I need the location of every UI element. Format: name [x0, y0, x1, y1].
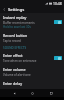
button[interactable]: Toggle on	[54, 56, 62, 60]
button[interactable]: Recents	[46, 89, 56, 97]
button[interactable]: Instant replay	[0, 13, 64, 31]
staticText: Enter volume	[3, 67, 26, 72]
staticText: Settings	[8, 7, 25, 13]
staticText: Volume of alert tone	[3, 73, 31, 77]
staticText: Tone when on enterance	[3, 59, 37, 63]
button[interactable]: Home	[27, 89, 37, 97]
button[interactable]: Back	[0, 6, 64, 13]
button[interactable]: Enter effect	[0, 51, 64, 65]
button[interactable]: Enter delay	[0, 79, 64, 89]
staticText: Enter delay	[3, 81, 22, 86]
button[interactable]: Back	[2, 7, 7, 12]
staticText: Buffer recent moments	[3, 21, 35, 25]
staticText: Record button	[3, 33, 28, 38]
button[interactable]: Toggle on	[54, 20, 62, 24]
staticText: SOUND EFFECTS	[3, 46, 27, 50]
staticText: Hold to save last 30s	[3, 25, 31, 29]
staticText: Enter effect	[3, 53, 23, 58]
staticText: Instant replay	[3, 15, 27, 20]
button[interactable]: Record button	[0, 31, 64, 45]
button[interactable]: Enter volume	[0, 65, 64, 79]
staticText: 10:48	[53, 1, 62, 6]
staticText: Tap to record	[3, 39, 21, 43]
button[interactable]: Back	[9, 89, 19, 97]
